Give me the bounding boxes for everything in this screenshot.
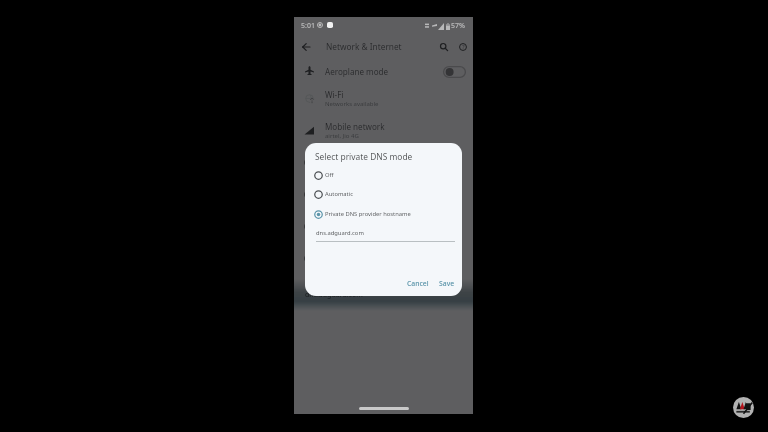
staticText: dns.adguard.com [305,290,363,300]
staticText: Off [325,171,334,179]
button[interactable]: Mobile network [294,117,473,145]
staticText: Aeroplane mode [325,66,389,77]
staticText: airtel, Jio 4G [325,132,359,140]
button[interactable]: Hotspot & tethering [294,181,473,209]
staticText: Mobile network [325,121,385,132]
button[interactable]: Private DNS [294,149,473,177]
button[interactable]: Cancel [402,276,434,291]
button[interactable]: Search [434,37,454,57]
button[interactable]: Off [305,167,462,183]
staticText: ? [462,43,465,51]
staticText: Wi-Fi [325,89,344,100]
staticText: 5:01 [301,21,315,31]
button[interactable]: Back [296,37,316,57]
button[interactable]: Wi-Fi [294,85,473,113]
staticText: dns.adguard.com [316,229,364,237]
button[interactable]: Data Saver [294,213,473,241]
staticText: Private DNS provider hostname [325,210,411,218]
staticText: 57% [451,21,465,31]
staticText: Cancel [407,279,429,288]
staticText: Private DNS [325,153,371,164]
staticText: Network & Internet [326,41,402,52]
staticText: Save [439,279,455,288]
button[interactable]: Private DNS [294,245,473,273]
staticText: Select private DNS mode [315,151,413,162]
button[interactable]: Save [434,276,460,291]
staticText: Automatic [325,190,353,198]
staticText: Networks available [325,100,379,108]
button[interactable]: Aeroplane mode toggle [443,66,466,78]
button[interactable]: Private DNS provider hostname [305,206,462,222]
button[interactable]: Help [453,37,473,57]
staticText: Off [325,228,334,236]
button[interactable]: Automatic [305,186,462,202]
button[interactable]: Aeroplane mode [294,61,473,83]
staticText: Hotspot & tethering [325,185,402,196]
